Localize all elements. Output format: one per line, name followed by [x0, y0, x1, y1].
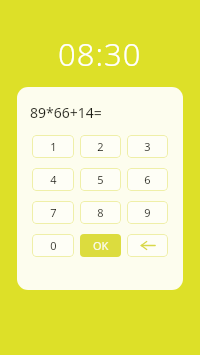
button[interactable]: 2 — [80, 135, 121, 158]
staticText: 1 — [50, 139, 57, 154]
staticText: 2 — [97, 139, 104, 154]
staticText: 08:30 — [58, 33, 142, 75]
staticText: 4 — [50, 172, 57, 187]
button[interactable]: 5 — [80, 168, 121, 191]
button[interactable]: 9 — [127, 201, 168, 224]
button[interactable]: 6 — [127, 168, 168, 191]
button[interactable]: 4 — [32, 168, 74, 191]
button[interactable]: 0 — [32, 234, 74, 257]
staticText: 89*66+14= — [30, 103, 102, 122]
button[interactable]: 8 — [80, 201, 121, 224]
staticText: OK — [93, 238, 109, 253]
button[interactable]: 1 — [32, 135, 74, 158]
button[interactable]: OK — [80, 234, 121, 257]
staticText: 5 — [97, 172, 104, 187]
staticText: 0 — [50, 238, 57, 253]
button[interactable]: Backspace — [127, 234, 168, 257]
staticText: 3 — [144, 139, 151, 154]
staticText: 6 — [144, 172, 151, 187]
staticText: 8 — [97, 205, 104, 220]
staticText: 9 — [144, 205, 151, 220]
button[interactable]: 3 — [127, 135, 168, 158]
staticText: 7 — [50, 205, 57, 220]
button[interactable]: 7 — [32, 201, 74, 224]
